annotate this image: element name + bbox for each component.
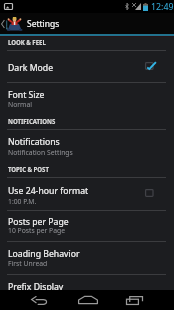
staticText: Posts per Page [8, 216, 69, 228]
button[interactable]: Recent apps [118, 290, 150, 310]
staticText: Use 24-hour format [8, 185, 89, 197]
button[interactable]: Unchecked [143, 187, 157, 199]
staticText: Prefix Display [8, 281, 64, 293]
staticText: Normal [8, 100, 33, 109]
button[interactable]: Navigate up [0, 13, 174, 34]
staticText: LOOK & FEEL [8, 38, 46, 46]
button[interactable]: Home [72, 290, 104, 310]
staticText: Font Size [8, 89, 45, 101]
button[interactable]: Notifications [0, 136, 174, 148]
button[interactable]: Back [23, 290, 55, 310]
staticText: Dark Mode [8, 62, 54, 74]
staticText: Loading Behavior [8, 248, 80, 260]
button[interactable]: Use 24-hour format [0, 185, 174, 197]
staticText: Notification Settings [8, 148, 73, 157]
staticText: 10 Posts per Page [8, 226, 66, 235]
staticText: First Unread [8, 259, 48, 268]
button[interactable]: LOOK & FEEL [0, 38, 174, 46]
staticText: Settings [27, 18, 60, 30]
button[interactable]: Prefix Display [0, 281, 174, 293]
button[interactable]: Checked [143, 60, 157, 72]
staticText: 1:00 P.M. [8, 197, 37, 206]
button[interactable]: Loading Behavior [0, 248, 174, 260]
button[interactable]: NOTIFICATIONS [0, 117, 174, 125]
staticText: Notifications [8, 136, 60, 148]
button[interactable]: TOPIC & POST [0, 165, 174, 173]
staticText: NOTIFICATIONS [8, 117, 56, 125]
staticText: TOPIC & POST [8, 165, 49, 173]
button[interactable]: Font Size [0, 89, 174, 101]
staticText: 12:49 [151, 1, 174, 13]
button[interactable]: Posts per Page [0, 216, 174, 228]
button[interactable]: Dark Mode [0, 62, 174, 74]
